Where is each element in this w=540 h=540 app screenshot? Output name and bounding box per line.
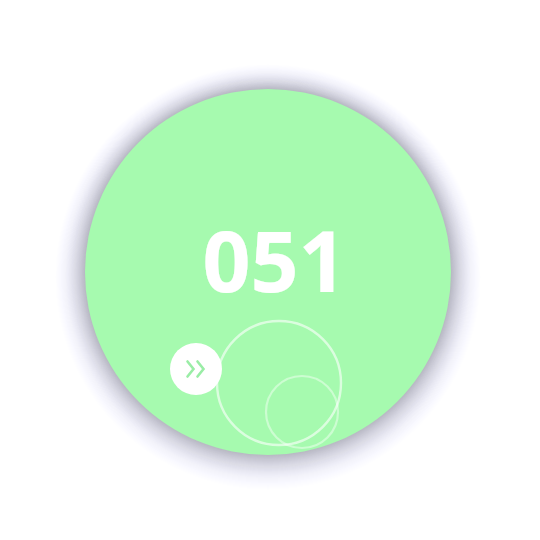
button[interactable]: Counter 051 [0,0,540,540]
button[interactable]: Next [0,0,540,540]
